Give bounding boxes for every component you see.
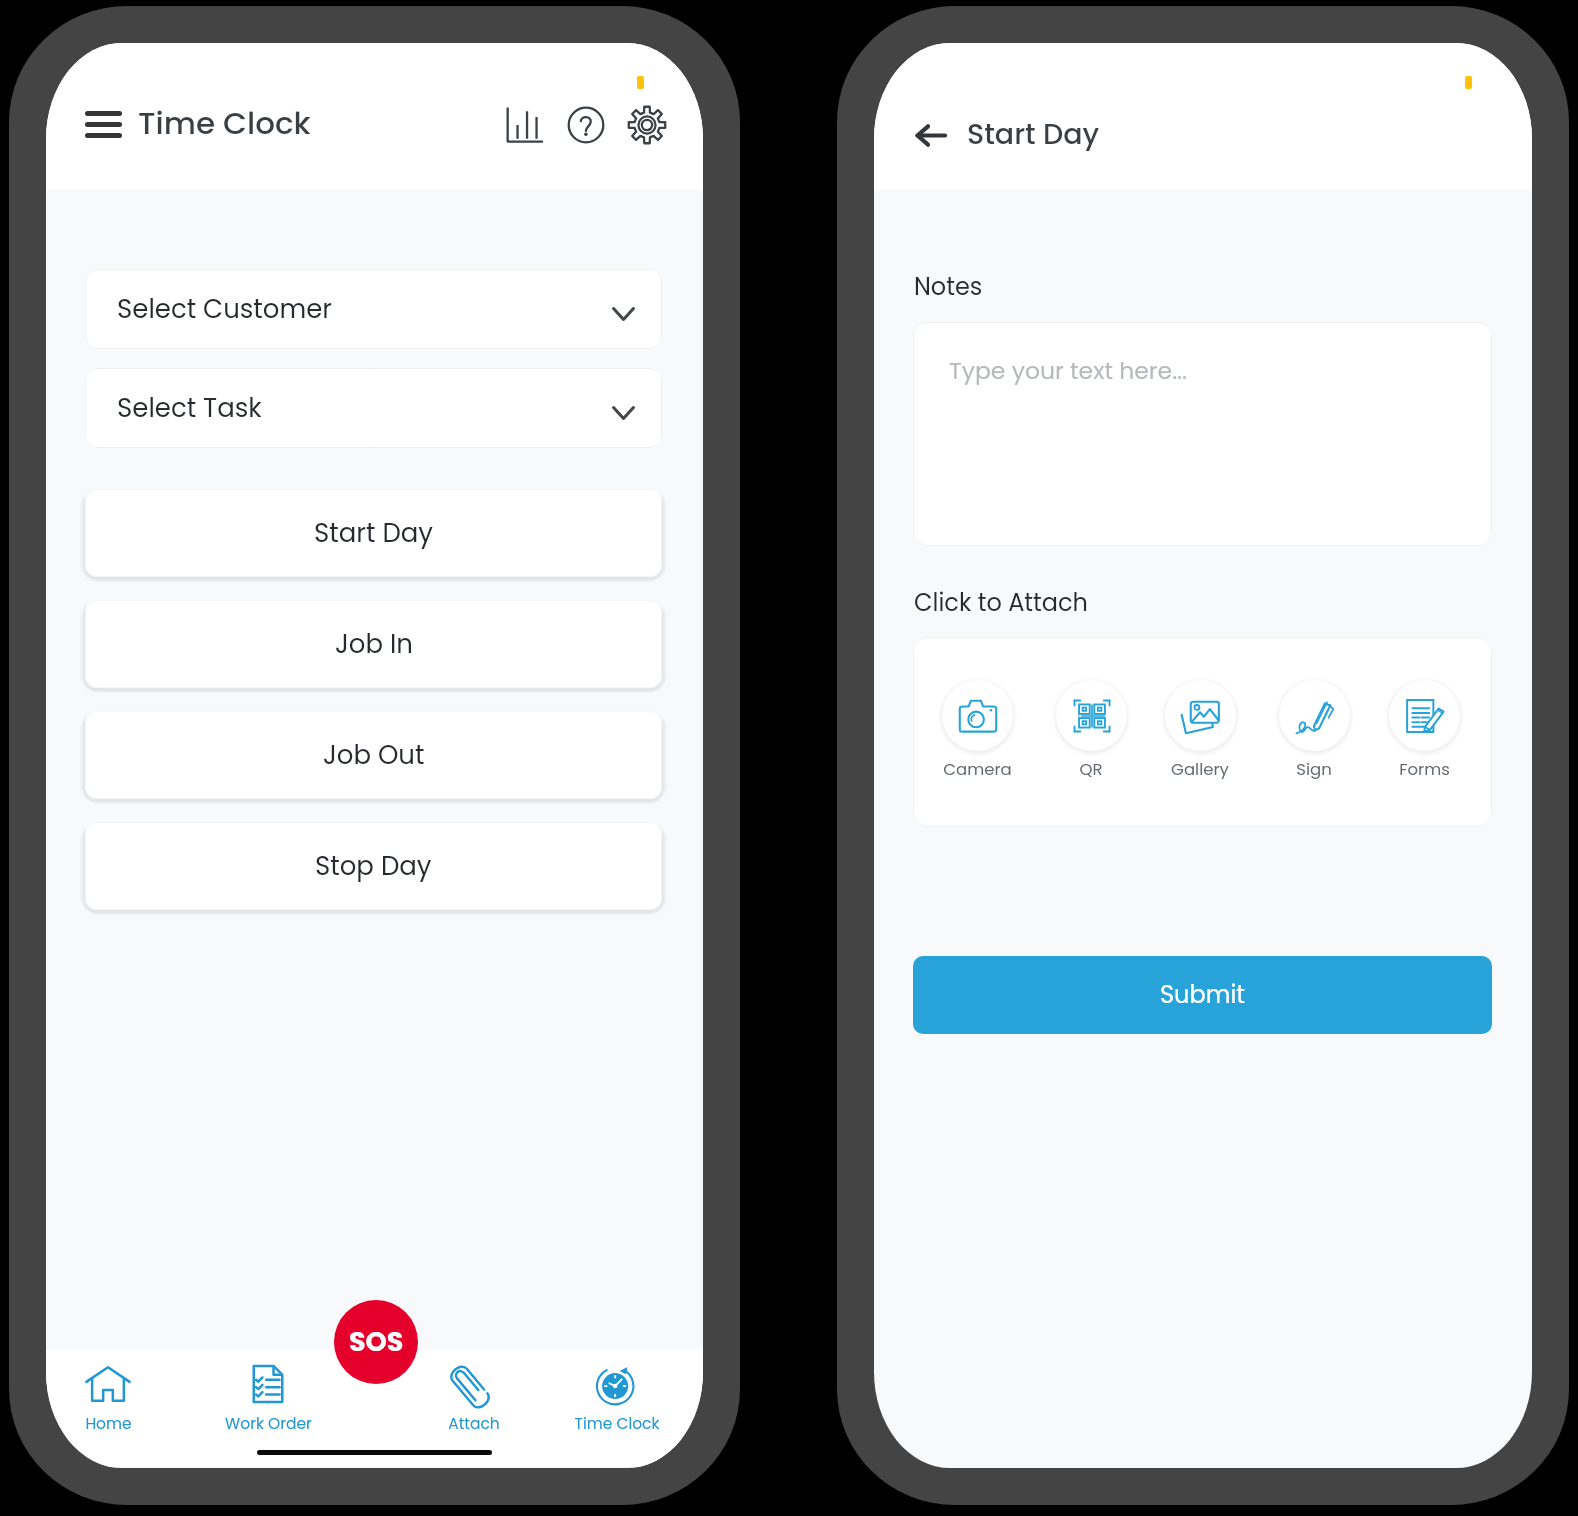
button[interactable]: Menu — [71, 99, 135, 149]
staticText: Select Task — [117, 390, 262, 426]
staticText: Start Day — [967, 114, 1100, 154]
staticText: Time Clock — [574, 1413, 660, 1435]
button[interactable]: Attach — [404, 1363, 544, 1461]
button[interactable]: Select Customer — [85, 269, 662, 349]
button[interactable]: Select Task — [85, 368, 662, 448]
button[interactable]: SOS emergency — [334, 1300, 418, 1384]
staticText: Home — [85, 1413, 132, 1435]
button[interactable]: Gallery — [1144, 680, 1256, 788]
staticText: Forms — [1399, 758, 1450, 781]
button[interactable]: Home — [46, 1363, 178, 1461]
button[interactable]: Settings — [621, 99, 673, 151]
button[interactable]: Time Clock — [547, 1363, 687, 1461]
button[interactable]: Job In — [85, 600, 662, 688]
button[interactable]: Reports — [498, 99, 550, 151]
staticText: Job In — [335, 626, 413, 662]
button[interactable]: Submit — [913, 956, 1492, 1034]
button[interactable]: Type your text here... — [913, 322, 1492, 546]
staticText: Select Customer — [117, 291, 333, 327]
button[interactable]: Start Day — [85, 489, 662, 577]
staticText: Sign — [1296, 758, 1332, 781]
staticText: Camera — [943, 758, 1012, 781]
button[interactable]: Stop Day — [85, 822, 662, 910]
staticText: Start Day — [314, 515, 434, 551]
button[interactable]: Sign — [1258, 680, 1370, 788]
staticText: SOS — [349, 1323, 404, 1361]
staticText: Notes — [914, 270, 983, 304]
button[interactable]: Forms — [1368, 680, 1480, 788]
button[interactable]: Back — [899, 111, 961, 159]
staticText: Stop Day — [315, 848, 432, 884]
button[interactable]: Camera — [921, 680, 1033, 788]
button[interactable]: Help — [560, 99, 612, 151]
staticText: Attach — [448, 1413, 500, 1435]
staticText: Click to Attach — [914, 586, 1088, 620]
staticText: Job Out — [323, 737, 425, 773]
staticText: Work Order — [225, 1413, 312, 1435]
staticText: Gallery — [1171, 758, 1229, 781]
button[interactable]: QR — [1035, 680, 1147, 788]
staticText: QR — [1079, 758, 1103, 781]
button[interactable]: Job Out — [85, 711, 662, 799]
staticText: Time Clock — [138, 101, 311, 144]
staticText: Submit — [1160, 978, 1246, 1012]
button[interactable]: Work Order — [198, 1363, 338, 1461]
staticText: Type your text here... — [949, 354, 1187, 387]
